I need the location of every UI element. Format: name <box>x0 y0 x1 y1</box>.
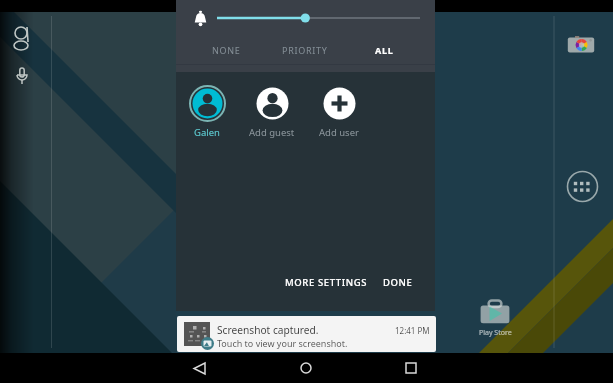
staticText: Screenshot captured. <box>217 323 319 337</box>
staticText: 12:41 PM <box>395 325 430 336</box>
staticText: Touch to view your screenshot. <box>217 337 348 349</box>
button[interactable]: Home <box>287 353 325 383</box>
button[interactable]: Screenshot captured. <box>177 316 436 352</box>
button[interactable]: Camera <box>566 30 596 60</box>
staticText: PRIORITY <box>282 44 328 56</box>
button[interactable]: Apps <box>566 170 599 203</box>
button[interactable]: NONE <box>186 36 266 64</box>
button[interactable]: ALL <box>344 36 424 64</box>
staticText: DONE <box>383 276 413 289</box>
staticText: ALL <box>375 44 394 56</box>
button[interactable]: PRIORITY <box>265 36 345 64</box>
button[interactable]: Add user <box>306 85 372 139</box>
staticText: Play Store <box>479 328 512 338</box>
staticText: MORE SETTINGS <box>285 276 367 289</box>
staticText: Galen <box>194 126 220 139</box>
button[interactable]: Galen <box>174 85 240 139</box>
button[interactable]: Play Store <box>471 296 519 338</box>
button[interactable]: Add guest <box>239 85 305 139</box>
button[interactable]: DONE <box>375 270 421 295</box>
button[interactable]: MORE SETTINGS <box>277 270 375 295</box>
staticText: Add user <box>319 126 359 139</box>
button[interactable]: Back <box>180 353 218 383</box>
staticText: NONE <box>212 44 241 56</box>
staticText: Add guest <box>249 126 295 139</box>
button[interactable]: Recents <box>392 353 430 383</box>
